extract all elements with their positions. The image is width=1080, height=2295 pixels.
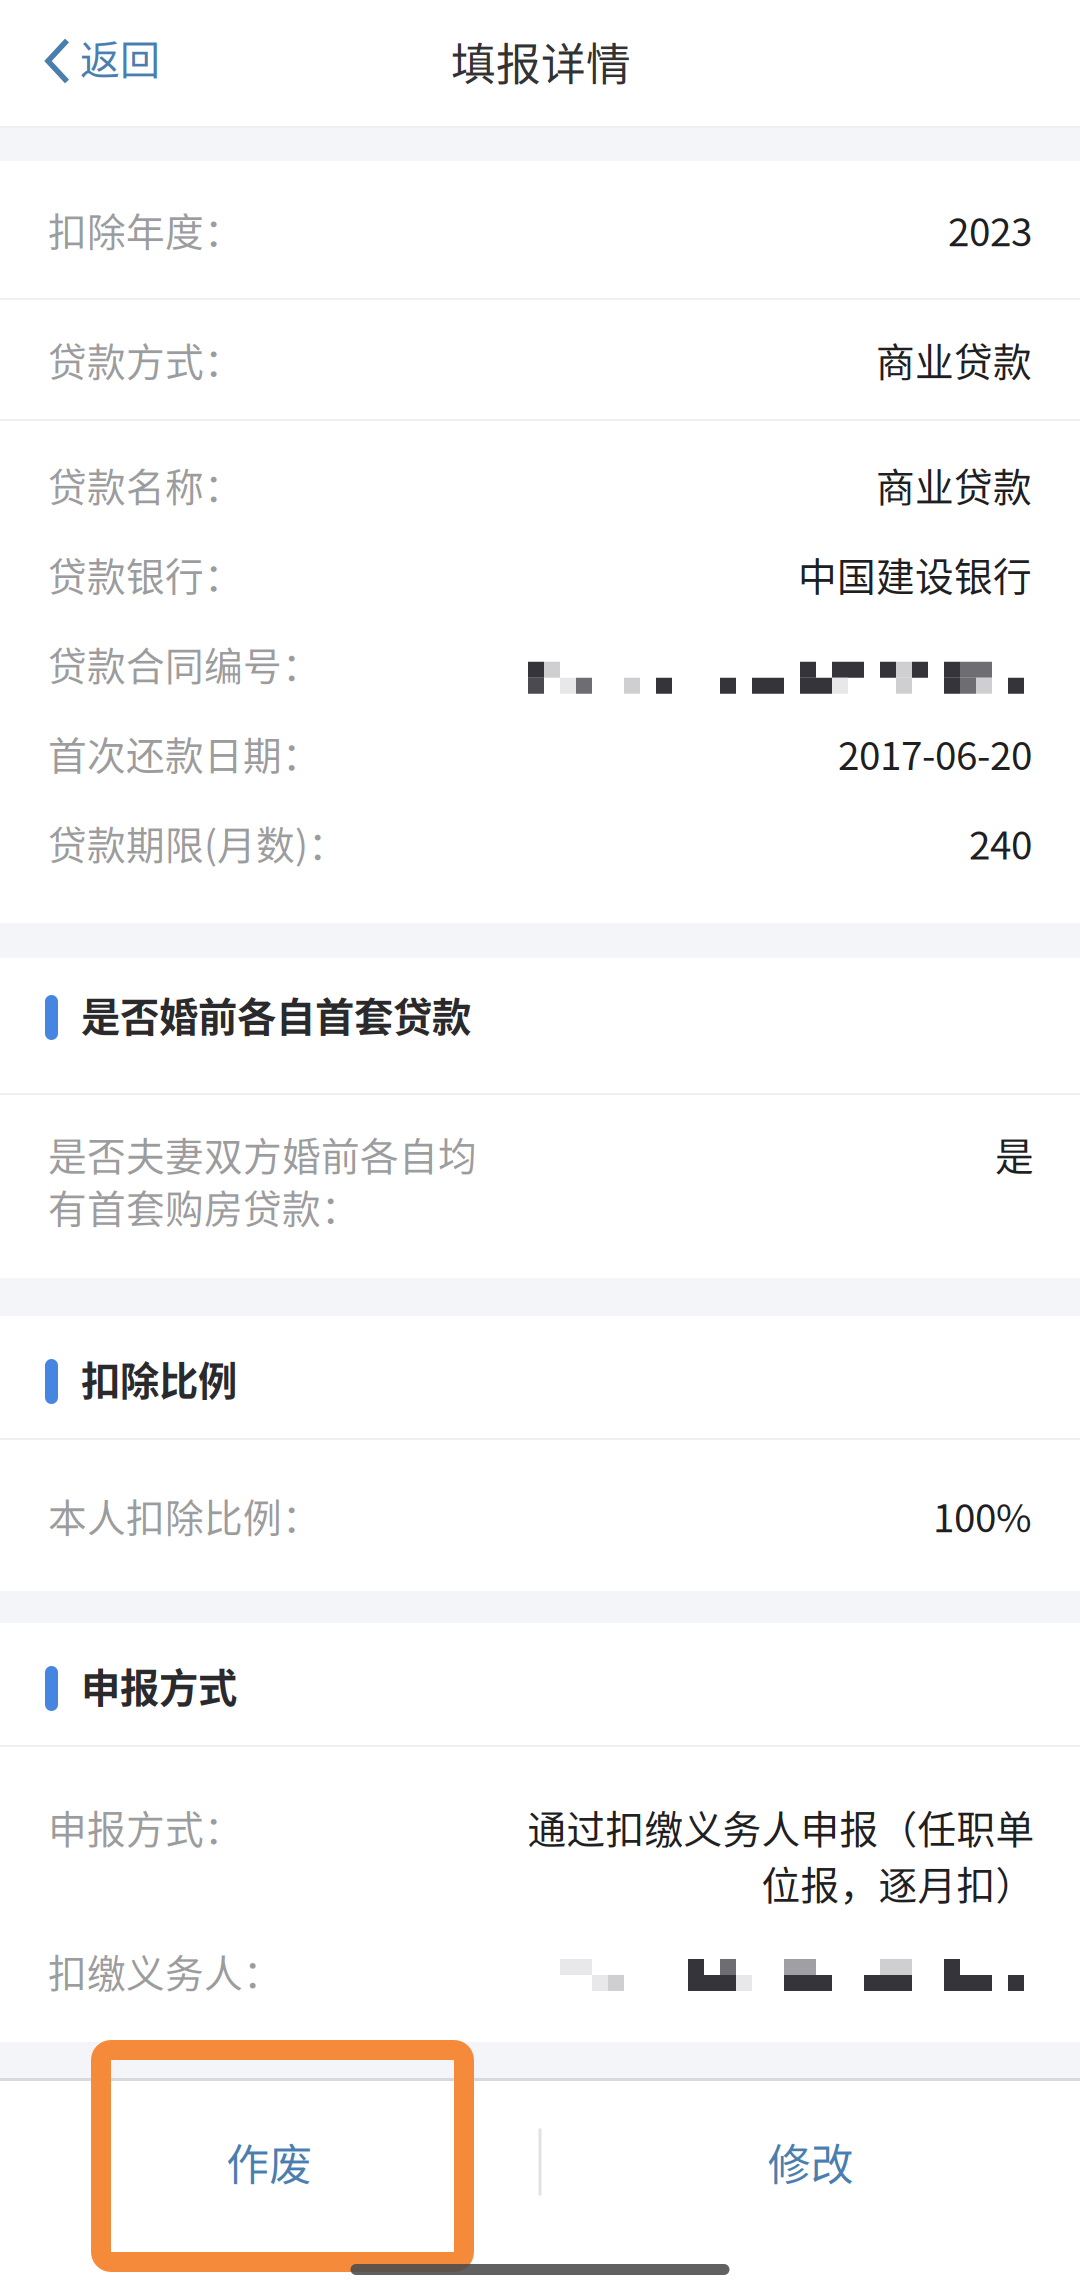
staticText: 贷款合同编号： [48, 636, 321, 692]
staticText: 贷款名称： [48, 457, 243, 513]
button[interactable]: 修改 [541, 2081, 1080, 2243]
staticText: 贷款方式： [48, 331, 243, 387]
staticText: 商业贷款 [876, 457, 1032, 513]
staticText: 是否夫妻双方婚前各自均有首套购房贷款： [48, 1126, 477, 1234]
staticText: 申报方式： [48, 1799, 243, 1855]
staticText: 通过扣缴义务人申报（任职单位报，逐月扣） [527, 1799, 1034, 1911]
staticText: 是否婚前各自首套贷款 [81, 986, 471, 1043]
staticText: 扣除比例 [81, 1350, 237, 1407]
staticText: 修改 [768, 2131, 854, 2193]
button[interactable]: 作废 [0, 2081, 538, 2243]
staticText: 申报方式 [81, 1657, 237, 1714]
staticText: 本人扣除比例： [48, 1487, 321, 1543]
staticText: 100% [933, 1487, 1032, 1543]
staticText: 贷款期限(月数)： [48, 815, 347, 871]
staticText: 返回 [80, 28, 160, 86]
staticText: 中国建设银行 [798, 546, 1032, 602]
staticText: 商业贷款 [876, 331, 1032, 387]
button[interactable]: 返回 [0, 0, 186, 126]
staticText: 2023 [948, 201, 1032, 257]
staticText: 作废 [226, 2131, 312, 2193]
staticText: 首次还款日期： [48, 725, 321, 781]
staticText: 2017-06-20 [838, 725, 1032, 781]
staticText: 贷款银行： [48, 546, 243, 602]
staticText: 240 [969, 815, 1032, 871]
staticText: 扣缴义务人： [48, 1943, 282, 1999]
staticText: 是 [995, 1126, 1034, 1182]
staticText: 填报详情 [451, 29, 631, 93]
staticText: 扣除年度： [48, 201, 243, 257]
